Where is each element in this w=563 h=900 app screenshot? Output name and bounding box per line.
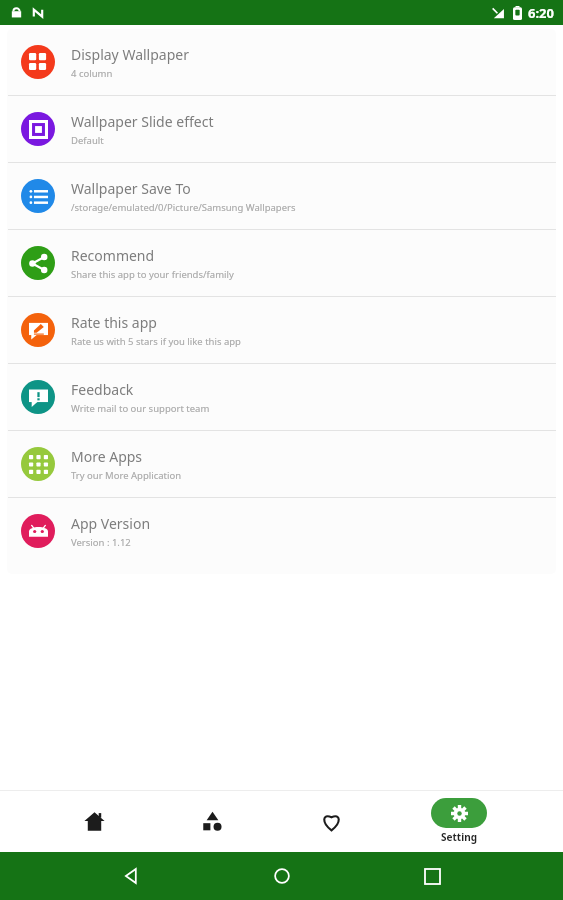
staticText: Share this app to your friends/family bbox=[71, 268, 234, 281]
button[interactable]: Wallpaper Slide effect bbox=[7, 96, 556, 162]
staticText: 4 column bbox=[71, 67, 113, 80]
button[interactable]: Home bbox=[262, 856, 302, 896]
button[interactable]: More Apps bbox=[7, 431, 556, 497]
staticText: Recommend bbox=[71, 246, 155, 265]
button[interactable]: Categories bbox=[188, 797, 236, 845]
staticText: Rate us with 5 stars if you like this ap… bbox=[71, 335, 241, 348]
staticText: Default bbox=[71, 134, 104, 147]
button[interactable]: Recommend bbox=[7, 230, 556, 296]
button[interactable]: Home bbox=[70, 797, 118, 845]
staticText: Setting bbox=[441, 830, 477, 844]
staticText: Try our More Application bbox=[71, 469, 182, 482]
button[interactable]: Rate this app bbox=[7, 297, 556, 363]
button[interactable]: Recents bbox=[412, 856, 452, 896]
button[interactable]: Back bbox=[111, 856, 151, 896]
staticText: Wallpaper Save To bbox=[71, 179, 191, 198]
staticText: Display Wallpaper bbox=[71, 45, 189, 64]
button[interactable]: Favorites bbox=[307, 797, 355, 845]
staticText: Feedback bbox=[71, 380, 134, 399]
button[interactable]: Setting bbox=[425, 794, 493, 848]
button[interactable]: Feedback bbox=[7, 364, 556, 430]
staticText: App Version bbox=[71, 514, 151, 533]
button[interactable]: Display Wallpaper bbox=[7, 29, 556, 95]
button[interactable]: App Version bbox=[7, 498, 556, 564]
staticText: Write mail to our support team bbox=[71, 402, 210, 415]
staticText: /storage/emulated/0/Picture/Samsung Wall… bbox=[71, 201, 296, 214]
staticText: Rate this app bbox=[71, 313, 157, 332]
staticText: Wallpaper Slide effect bbox=[71, 112, 214, 131]
button[interactable]: Wallpaper Save To bbox=[7, 163, 556, 229]
staticText: More Apps bbox=[71, 447, 143, 466]
staticText: Version : 1.12 bbox=[71, 536, 131, 549]
staticText: 6:20 bbox=[528, 4, 554, 22]
